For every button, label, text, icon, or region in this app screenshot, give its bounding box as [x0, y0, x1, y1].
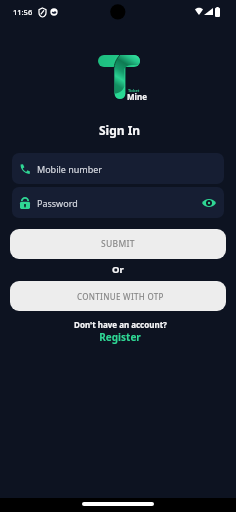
staticText: Sign In	[99, 122, 141, 138]
button[interactable]: Show password	[201, 195, 217, 211]
staticText: Ticket	[128, 88, 140, 93]
button[interactable]: Password	[12, 187, 224, 218]
staticText: SUBMIT	[101, 238, 135, 250]
staticText: Or	[112, 263, 124, 276]
button[interactable]: Mobile number	[12, 153, 224, 184]
staticText: Password	[37, 197, 78, 209]
staticText: Mine	[127, 91, 147, 102]
staticText: Mobile number	[37, 163, 103, 175]
staticText: Don't have an account?	[74, 319, 167, 330]
button[interactable]: SUBMIT	[10, 229, 226, 259]
staticText: 11:56	[13, 7, 33, 17]
staticText: CONTINUE WITH OTP	[77, 291, 164, 302]
button[interactable]: Register	[99, 330, 141, 344]
button[interactable]: CONTINUE WITH OTP	[10, 281, 226, 311]
